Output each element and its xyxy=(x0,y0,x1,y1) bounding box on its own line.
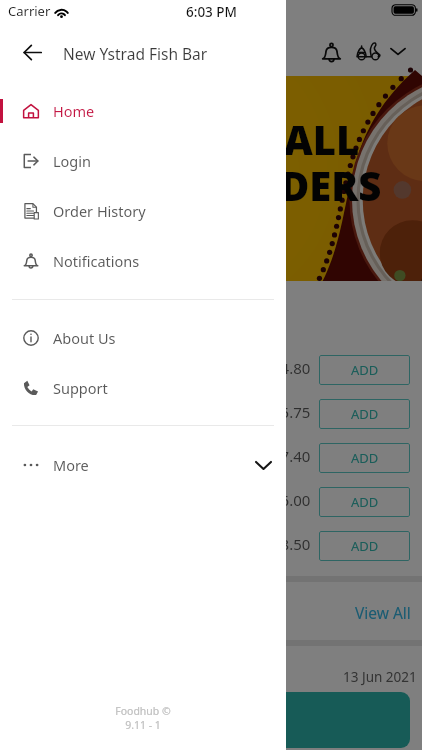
button[interactable]: ADD xyxy=(319,399,410,429)
button[interactable]: ADD xyxy=(319,487,410,517)
button[interactable]: About Us xyxy=(0,313,286,363)
button[interactable]: ADD xyxy=(319,531,410,561)
button[interactable]: More xyxy=(0,440,286,490)
staticText: £6.00 xyxy=(272,490,311,510)
button[interactable]: ADD xyxy=(319,355,410,385)
staticText: Foodhub © xyxy=(115,704,171,718)
staticText: ORDERS xyxy=(221,158,382,212)
staticText: About Us xyxy=(53,328,116,348)
staticText: £7.40 xyxy=(272,446,311,466)
staticText: Carrier xyxy=(8,2,51,20)
button[interactable]: View All xyxy=(352,598,414,626)
button[interactable]: Back xyxy=(10,30,54,74)
button[interactable]: Expand xyxy=(387,40,409,62)
button[interactable]: Home xyxy=(0,86,286,136)
staticText: ADD xyxy=(351,405,379,423)
button[interactable]: Login xyxy=(0,136,286,186)
staticText: SMALL xyxy=(222,112,360,166)
button[interactable]: Support xyxy=(0,363,286,413)
button[interactable]: Delivery options xyxy=(353,38,383,64)
staticText: View All xyxy=(355,602,411,623)
staticText: Login xyxy=(53,151,91,171)
button[interactable]: Notifications xyxy=(318,39,344,65)
staticText: £4.80 xyxy=(272,358,311,378)
staticText: 9.11 - 1 xyxy=(125,718,161,732)
button[interactable]: Order History xyxy=(0,186,286,236)
staticText: ADD xyxy=(351,361,379,379)
staticText: £5.75 xyxy=(272,402,311,422)
button[interactable]: Notifications xyxy=(0,236,286,286)
staticText: More xyxy=(53,455,89,475)
staticText: Notifications xyxy=(53,251,140,271)
staticText: ADD xyxy=(351,537,379,555)
staticText: £8.50 xyxy=(272,534,311,554)
staticText: Order History xyxy=(53,201,146,221)
staticText: Home xyxy=(53,101,95,121)
button[interactable] xyxy=(8,692,410,748)
staticText: 6:03 PM xyxy=(186,3,237,21)
staticText: ADD xyxy=(351,449,379,467)
staticText: 13 Jun 2021 xyxy=(343,668,417,686)
staticText: ADD xyxy=(351,493,379,511)
staticText: New Ystrad Fish Bar xyxy=(63,43,208,64)
staticText: Support xyxy=(53,378,108,398)
button[interactable]: ADD xyxy=(319,443,410,473)
